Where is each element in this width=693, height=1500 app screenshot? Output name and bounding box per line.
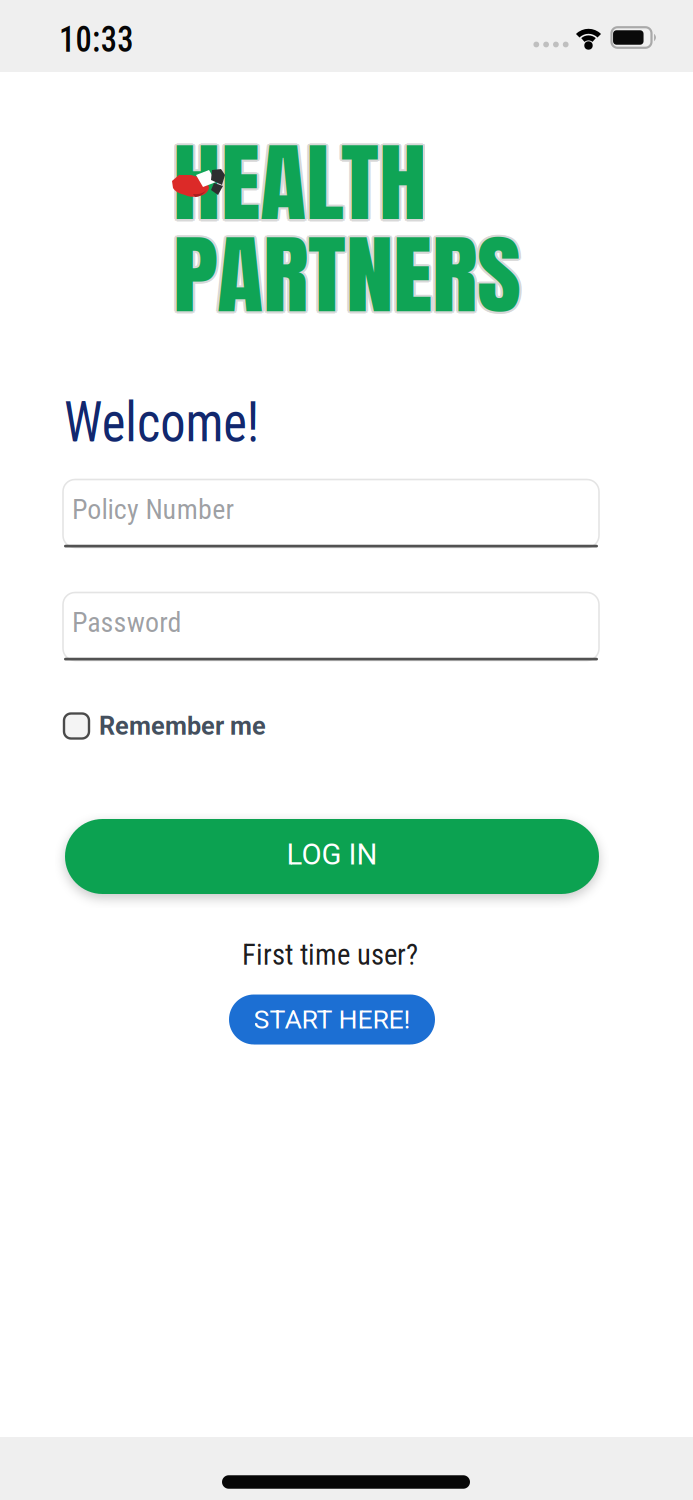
staticText: PARTNERS [173,206,521,349]
staticText: HEALTH [175,111,429,255]
staticText: PARTNERS [171,203,519,347]
staticText: HEALTH [173,111,427,255]
staticText: HEALTH [171,113,425,256]
staticText: PARTNERS [173,203,521,347]
button[interactable]: LOG IN [65,819,599,894]
staticText: 10:33 [59,17,145,61]
staticText: PARTNERS [171,205,519,348]
staticText: PARTNERS [173,201,521,344]
staticText: PARTNERS [175,205,523,348]
staticText: PARTNERS [175,201,523,345]
staticText: LOG IN [286,837,377,872]
staticText: First time user? [242,938,418,972]
staticText: HEALTH [175,113,429,256]
button[interactable]: Remember me [64,706,384,746]
staticText: HEALTH [173,109,427,252]
staticText: PARTNERS [175,203,523,347]
staticText: HEALTH [171,109,425,253]
staticText: HEALTH [175,109,429,253]
staticText: Welcome! [64,389,281,455]
staticText: Password [72,606,181,639]
button[interactable]: Password [63,592,599,660]
staticText: HEALTH [171,111,425,255]
staticText: HEALTH [173,114,427,257]
staticText: Policy Number [72,493,234,526]
staticText: PARTNERS [171,201,519,345]
button[interactable]: Policy Number [63,479,599,547]
button[interactable]: START HERE! [229,994,435,1044]
staticText: START HERE! [253,1004,410,1035]
staticText: Remember me [99,711,266,741]
